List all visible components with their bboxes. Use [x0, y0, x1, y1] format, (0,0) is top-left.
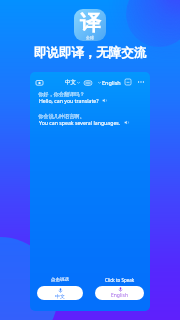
button[interactable]: You can speak several languages. — [39, 119, 129, 126]
button[interactable]: 中文 — [65, 79, 80, 86]
button[interactable]: 中文 — [37, 286, 83, 300]
button[interactable]: Swap languages — [83, 78, 92, 87]
button[interactable]: Translate app — [74, 9, 106, 41]
staticText: 即说即译，无障交流 — [0, 45, 180, 61]
staticText: 全球 — [86, 35, 94, 40]
button[interactable]: Hello, can you translate? — [39, 97, 107, 104]
staticText: 中文 — [55, 293, 65, 299]
other: Play audio — [102, 98, 107, 103]
staticText: Hello, can you translate? — [39, 97, 99, 104]
staticText: Click to Speak — [105, 277, 135, 283]
staticText: You can speak several languages. — [39, 119, 121, 126]
button[interactable]: More options — [137, 78, 145, 86]
button[interactable]: English — [98, 79, 121, 86]
staticText: 点击说话 — [51, 277, 69, 283]
button[interactable]: Camera translate — [35, 78, 44, 87]
button[interactable]: English — [95, 286, 144, 300]
staticText: English — [111, 292, 129, 299]
staticText: English — [102, 79, 121, 86]
button[interactable]: History — [124, 78, 132, 86]
staticText: 译 — [80, 10, 101, 36]
other: Play audio — [124, 120, 129, 125]
staticText: 中文 — [65, 79, 76, 86]
staticText: 你好，你会翻译吗？ — [38, 91, 85, 98]
staticText: 你会说几种语言啊。 — [38, 113, 85, 120]
